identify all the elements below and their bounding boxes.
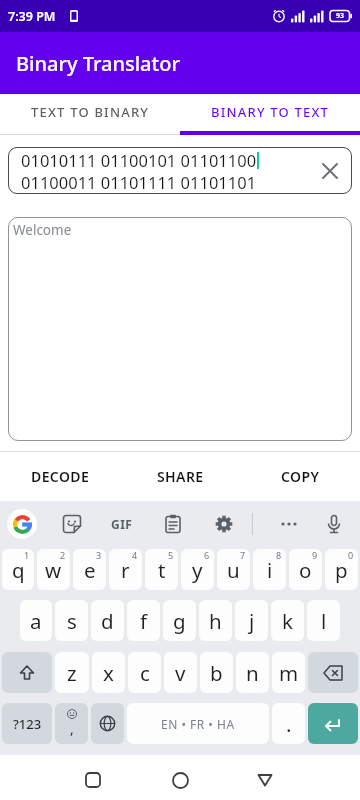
button[interactable]: n xyxy=(236,652,269,693)
button[interactable]: BINARY TO TEXT xyxy=(180,94,360,129)
button[interactable]: m xyxy=(272,652,305,693)
staticText: . xyxy=(286,710,292,738)
staticText: 01010111 01100101 01101100 xyxy=(21,149,257,171)
button[interactable] xyxy=(164,764,196,796)
button[interactable]: d xyxy=(91,600,124,641)
staticText: a xyxy=(30,607,42,635)
button[interactable]: y xyxy=(181,549,214,590)
staticText: o xyxy=(299,556,312,584)
staticText: 01100011 01101111 01101101 xyxy=(21,171,257,193)
staticText: v xyxy=(175,659,186,687)
button[interactable]: COPY xyxy=(240,452,360,501)
staticText: q xyxy=(12,556,25,584)
button[interactable]: k xyxy=(271,600,304,641)
staticText: u xyxy=(227,556,240,584)
staticText: 4 xyxy=(132,549,138,561)
staticText: GIF xyxy=(111,516,133,532)
button[interactable]: z xyxy=(55,652,89,693)
button[interactable] xyxy=(7,509,37,539)
staticText: 3 xyxy=(96,549,102,561)
button[interactable] xyxy=(58,512,86,536)
staticText: x xyxy=(103,659,114,687)
staticText: TEXT TO BINARY xyxy=(31,103,150,121)
staticText: r xyxy=(121,556,130,584)
button[interactable]: u xyxy=(217,549,250,590)
staticText: e xyxy=(84,556,96,584)
button[interactable] xyxy=(275,512,303,536)
button[interactable]: j xyxy=(235,600,268,641)
staticText: 8 xyxy=(276,549,282,561)
button[interactable]: r xyxy=(109,549,142,590)
staticText: y xyxy=(192,556,203,584)
button[interactable]: e xyxy=(73,549,106,590)
staticText: l xyxy=(321,607,327,635)
button[interactable]: b xyxy=(200,652,233,693)
staticText: z xyxy=(67,659,77,687)
button[interactable] xyxy=(210,512,238,536)
button[interactable]: ?123 xyxy=(2,703,52,744)
button[interactable]: x xyxy=(92,652,125,693)
staticText: c xyxy=(140,659,150,687)
button[interactable]: c xyxy=(128,652,161,693)
staticText: k xyxy=(282,607,293,635)
staticText: 0 xyxy=(348,549,354,561)
staticText: m xyxy=(279,659,299,687)
button[interactable]: SHARE xyxy=(120,452,240,501)
button[interactable]: GIF xyxy=(108,512,136,536)
button[interactable]: w xyxy=(37,549,70,590)
staticText: 5 xyxy=(168,549,174,561)
button[interactable]: t xyxy=(145,549,178,590)
staticText: SHARE xyxy=(157,467,204,486)
staticText: DECODE xyxy=(31,467,90,486)
staticText: i xyxy=(267,556,273,584)
button[interactable] xyxy=(322,163,338,179)
staticText: j xyxy=(249,607,255,635)
staticText: h xyxy=(209,607,222,635)
button[interactable]: p xyxy=(325,549,358,590)
staticText: Welcome xyxy=(13,221,72,239)
staticText: f xyxy=(140,607,148,635)
staticText: Binary Translator xyxy=(16,50,180,77)
button[interactable]: EN • FR • HA xyxy=(127,703,269,744)
staticText: n xyxy=(246,659,259,687)
button[interactable]: g xyxy=(163,600,196,641)
staticText: w xyxy=(45,556,62,584)
button[interactable] xyxy=(249,764,281,796)
staticText: p xyxy=(335,556,348,584)
button[interactable]: f xyxy=(127,600,160,641)
button[interactable]: q xyxy=(2,549,34,590)
button[interactable]: l xyxy=(307,600,340,641)
button[interactable]: a xyxy=(20,600,52,641)
staticText: s xyxy=(67,607,77,635)
staticText: ?123 xyxy=(13,715,42,733)
staticText: g xyxy=(173,607,186,635)
button[interactable]: s xyxy=(55,600,88,641)
staticText: 93 xyxy=(336,11,345,21)
button[interactable] xyxy=(91,703,124,744)
staticText: d xyxy=(101,607,114,635)
staticText: , xyxy=(70,719,74,738)
staticText: 9 xyxy=(312,549,318,561)
staticText: BINARY TO TEXT xyxy=(211,103,330,121)
button[interactable]: i xyxy=(253,549,286,590)
button[interactable]: TEXT TO BINARY xyxy=(0,94,180,129)
staticText: t xyxy=(158,556,166,584)
button[interactable] xyxy=(2,652,52,693)
button[interactable]: . xyxy=(272,703,305,744)
staticText: 7:39 PM xyxy=(8,8,56,25)
button[interactable]: DECODE xyxy=(0,452,120,501)
button[interactable] xyxy=(320,512,348,536)
button[interactable]: v xyxy=(164,652,197,693)
staticText: 7 xyxy=(240,549,246,561)
button[interactable]: h xyxy=(199,600,232,641)
button[interactable] xyxy=(159,512,187,536)
button[interactable] xyxy=(77,764,109,796)
button[interactable] xyxy=(308,652,358,693)
staticText: COPY xyxy=(281,467,320,486)
staticText: b xyxy=(210,659,223,687)
staticText: 6 xyxy=(204,549,210,561)
button[interactable] xyxy=(308,703,358,744)
button[interactable]: o xyxy=(289,549,322,590)
staticText: 2 xyxy=(60,549,66,561)
button[interactable]: , xyxy=(55,703,88,744)
